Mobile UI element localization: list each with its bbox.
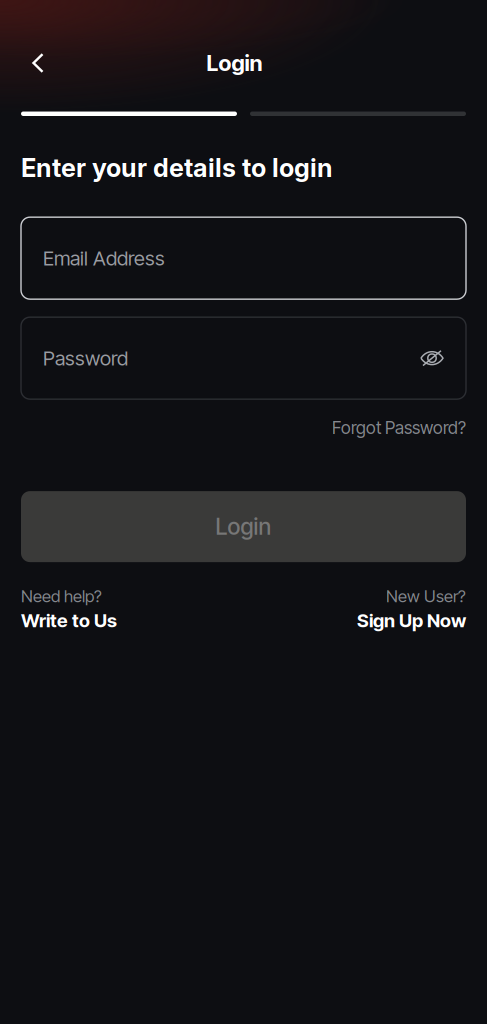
staticText: Login [206, 50, 262, 76]
staticText: Sign Up Now [357, 609, 466, 632]
staticText: Forgot Password? [332, 417, 466, 438]
button[interactable]: Forgot Password? [332, 417, 466, 438]
staticText: Email Address [43, 246, 165, 270]
button[interactable]: Show password [420, 348, 444, 368]
staticText: New User? [386, 586, 466, 606]
staticText: Password [43, 346, 128, 370]
button[interactable]: Back [16, 41, 60, 85]
button[interactable]: Sign Up Now [357, 609, 466, 632]
button[interactable]: Write to Us [21, 609, 117, 632]
staticText: Write to Us [21, 609, 117, 632]
staticText: Login [215, 513, 271, 540]
staticText: Need help? [21, 586, 102, 606]
button[interactable]: Login [21, 491, 466, 562]
staticText: Enter your details to login [21, 152, 333, 183]
